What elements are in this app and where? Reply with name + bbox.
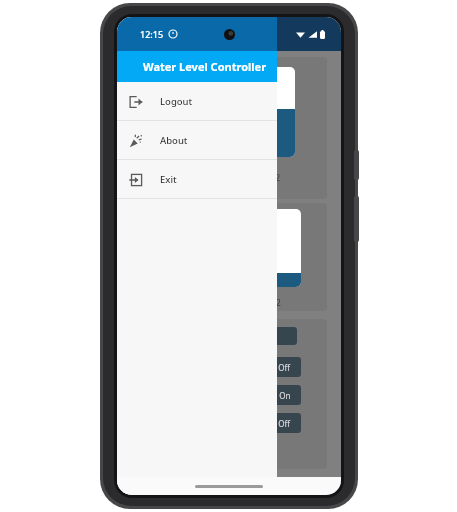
button[interactable]: Logout bbox=[117, 82, 277, 120]
button[interactable]: Turn On bbox=[249, 385, 301, 405]
button[interactable]: Turn Off bbox=[249, 357, 301, 377]
button[interactable]: About bbox=[117, 121, 277, 159]
staticText: 12:15 bbox=[140, 28, 164, 40]
staticText: Turn Off bbox=[259, 418, 291, 429]
button[interactable]: Exit bbox=[117, 160, 277, 198]
other: Logout bbox=[129, 95, 143, 109]
staticText: Exit bbox=[160, 173, 177, 186]
other: About bbox=[129, 134, 143, 148]
staticText: Logout bbox=[160, 95, 193, 108]
staticText: Turn On bbox=[260, 390, 291, 401]
staticText: Sump 2 bbox=[249, 296, 281, 308]
other: Exit bbox=[129, 173, 143, 187]
staticText: Turn Off bbox=[259, 362, 291, 373]
staticText: Tank 2 bbox=[253, 171, 281, 183]
button[interactable]: Turn Off bbox=[249, 413, 301, 433]
staticText: Water Level Controller bbox=[143, 59, 267, 74]
staticText: About bbox=[160, 134, 188, 147]
